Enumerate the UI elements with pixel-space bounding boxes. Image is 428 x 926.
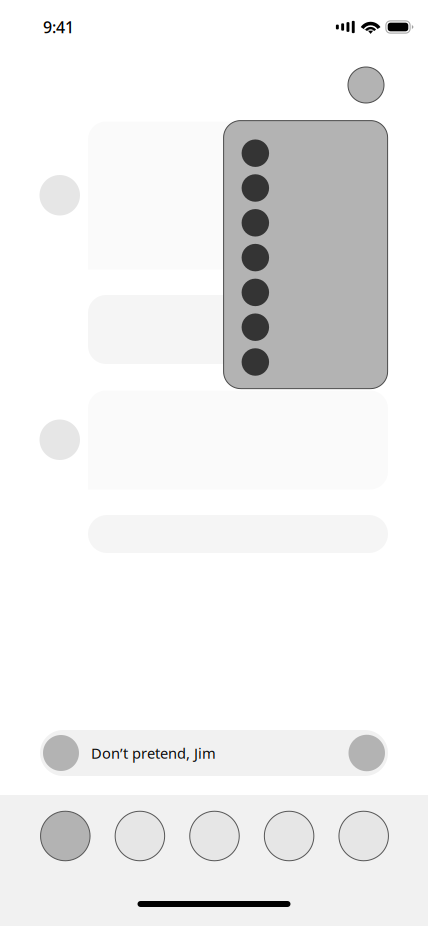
- staticText: Don’t pretend, Jim: [91, 743, 216, 763]
- button[interactable]: Tab 1: [28, 805, 103, 867]
- button[interactable]: Profile: [348, 67, 384, 103]
- button[interactable]: Menu item 3: [242, 209, 370, 236]
- button[interactable]: Menu item 2: [242, 174, 370, 202]
- button[interactable]: Menu item 5: [242, 279, 370, 306]
- button[interactable]: Menu item 7: [242, 348, 370, 376]
- button[interactable]: Send: [348, 735, 385, 771]
- button[interactable]: Add attachment: [43, 735, 79, 771]
- button[interactable]: Menu item 6: [242, 313, 370, 341]
- button[interactable]: Tab 3: [177, 805, 252, 867]
- button[interactable]: Tab 5: [326, 805, 401, 867]
- button[interactable]: Tab 2: [103, 805, 177, 867]
- staticText: 9:41: [43, 16, 74, 38]
- button[interactable]: Menu item 4: [242, 244, 370, 271]
- button[interactable]: Menu item 1: [242, 139, 370, 167]
- button[interactable]: Tab 4: [252, 805, 326, 867]
